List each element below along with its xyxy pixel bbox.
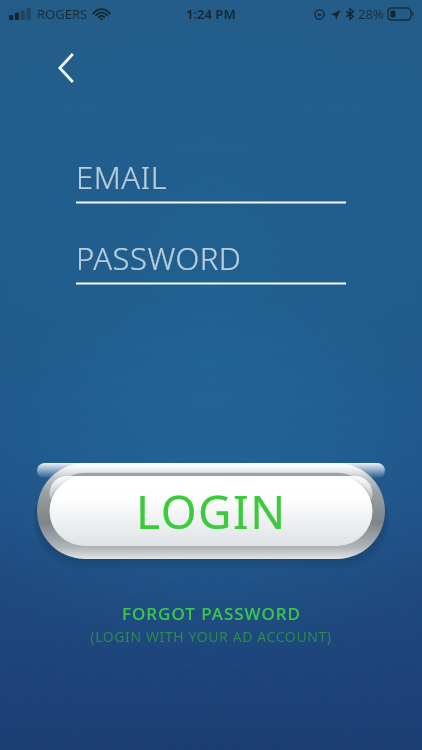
staticText: PASSWORD [76,237,242,279]
button[interactable]: FORGOT PASSWORD [0,602,422,646]
button[interactable]: PASSWORD [76,237,346,285]
button[interactable]: LOGIN [37,463,385,563]
staticText: 28% [358,5,384,23]
staticText: 1:24 PM [186,5,236,23]
staticText: FORGOT PASSWORD [122,602,301,625]
staticText: ROGERS [37,5,88,23]
staticText: (LOGIN WITH YOUR AD ACCOUNT) [90,627,332,646]
staticText: LOGIN [136,480,287,543]
button[interactable]: EMAIL [76,156,346,204]
button[interactable]: Back [44,46,88,90]
staticText: EMAIL [76,156,168,198]
